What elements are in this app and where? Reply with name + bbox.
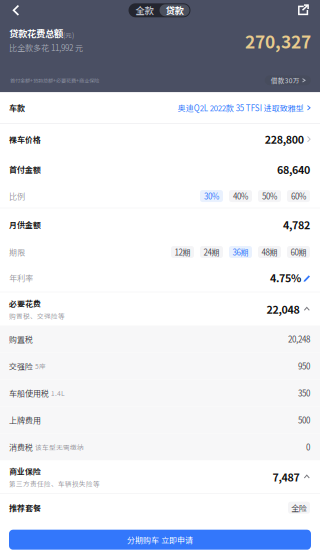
button[interactable]: 贷款 — [159, 4, 189, 16]
staticText: (元) — [63, 30, 74, 40]
staticText: 4,782 — [283, 217, 310, 232]
staticText: 月供金额 — [9, 219, 41, 230]
staticText: 7,487 — [273, 469, 300, 484]
staticText: 比例 — [9, 190, 25, 202]
staticText: 全险 — [291, 502, 307, 513]
staticText: 50% — [262, 190, 277, 202]
button[interactable]: 车款 — [0, 92, 320, 123]
button[interactable]: 48期 — [258, 246, 281, 258]
staticText: 该车型无需缴纳 — [33, 442, 84, 452]
staticText: 期限 — [9, 246, 25, 258]
staticText: 12期 — [174, 246, 190, 258]
button[interactable]: 返回 — [3, 0, 29, 21]
button[interactable]: 30% — [200, 190, 223, 202]
button[interactable]: 全款 — [129, 4, 159, 16]
staticText: 推荐套餐 — [9, 502, 41, 513]
staticText: 950 — [298, 360, 310, 372]
staticText: 消费税 — [9, 441, 33, 453]
staticText: 0 — [306, 441, 310, 453]
staticText: 年利率 — [9, 272, 33, 283]
staticText: 首付金额+贷款总额+必要花费+商业保险 — [10, 76, 99, 84]
button[interactable]: 40% — [229, 190, 252, 202]
staticText: 首付金额 — [9, 163, 41, 175]
staticText: 270,327 — [245, 28, 311, 53]
staticText: 贷款 — [165, 3, 183, 17]
staticText: 5座 — [33, 361, 46, 371]
staticText: 500 — [298, 414, 310, 426]
staticText: 贷款花费总额 — [9, 26, 63, 40]
staticText: 购置税、交强险等 — [9, 311, 65, 321]
staticText: 36期 — [232, 246, 248, 258]
button[interactable]: 分享 — [290, 0, 316, 21]
button[interactable]: 全险 — [288, 502, 310, 514]
staticText: 24期 — [203, 246, 219, 258]
staticText: 全款 — [135, 3, 153, 17]
staticText: 交强险 — [9, 360, 33, 372]
staticText: 40% — [233, 190, 248, 202]
button[interactable]: 年利率 — [0, 263, 320, 292]
button[interactable]: 分期购车 立即申请 — [9, 530, 311, 550]
staticText: 商业保险 — [9, 465, 41, 477]
button[interactable]: 必要花费 — [0, 292, 320, 325]
staticText: 48期 — [261, 246, 277, 258]
staticText: 购置税 — [9, 333, 33, 345]
button[interactable]: 12期 — [171, 246, 194, 258]
button[interactable]: 60期 — [287, 246, 310, 258]
staticText: 350 — [298, 387, 310, 399]
staticText: 228,800 — [265, 131, 304, 147]
staticText: 22,048 — [267, 301, 300, 317]
button[interactable]: 商业保险 — [0, 460, 320, 493]
button[interactable]: 借款30万 — [265, 75, 311, 85]
staticText: 裸车价格 — [9, 133, 41, 145]
staticText: 分期购车 立即申请 — [127, 534, 193, 545]
staticText: 60期 — [290, 246, 306, 258]
button[interactable]: 24期 — [200, 246, 223, 258]
button[interactable]: 50% — [258, 190, 281, 202]
button[interactable]: 36期 — [229, 246, 252, 258]
staticText: 必要花费 — [9, 297, 41, 309]
button[interactable]: 裸车价格 — [0, 124, 320, 154]
staticText: 比全款多花 11,992 元 — [9, 42, 83, 53]
staticText: 第三方责任险、车辆损失险等 — [9, 479, 100, 488]
button[interactable]: 60% — [287, 190, 310, 202]
staticText: 上牌费用 — [9, 414, 41, 426]
staticText: 借款30万 — [271, 75, 300, 85]
staticText: 20,248 — [288, 333, 310, 345]
staticText: 4.75% — [270, 270, 301, 285]
staticText: 车船使用税 — [9, 387, 49, 399]
staticText: 车款 — [9, 102, 25, 114]
staticText: 奥迪Q2L 2022款 35 TFSI 进取致雅型 — [178, 102, 304, 114]
staticText: 68,640 — [277, 162, 310, 177]
staticText: 1.4L — [49, 388, 65, 398]
staticText: 60% — [291, 190, 306, 202]
staticText: 30% — [204, 190, 219, 202]
